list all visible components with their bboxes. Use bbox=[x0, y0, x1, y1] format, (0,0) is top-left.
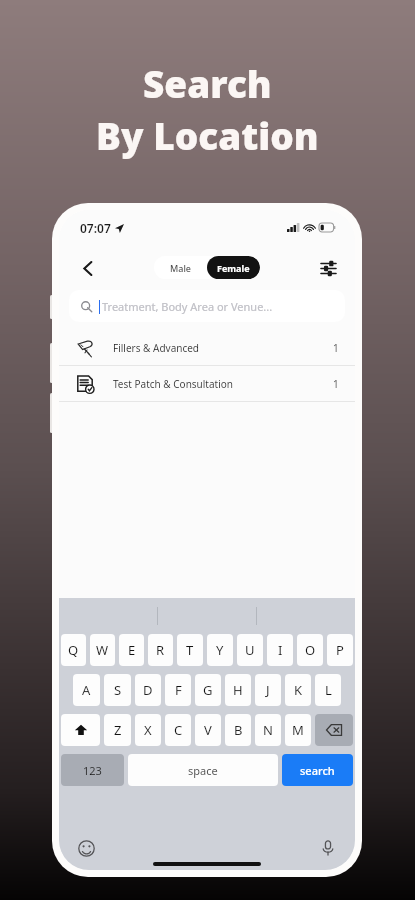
button[interactable]: U bbox=[237, 634, 263, 666]
staticText: 123 bbox=[83, 763, 102, 778]
button[interactable]: Backspace bbox=[315, 714, 353, 746]
button[interactable]: F bbox=[165, 674, 191, 706]
button[interactable]: search bbox=[282, 754, 353, 786]
button[interactable]: C bbox=[165, 714, 191, 746]
button[interactable]: J bbox=[255, 674, 281, 706]
staticText: T bbox=[186, 641, 194, 659]
staticText: 1 bbox=[333, 341, 339, 355]
staticText: Q bbox=[68, 641, 79, 659]
button[interactable]: A bbox=[73, 674, 100, 706]
button[interactable]: O bbox=[297, 634, 323, 666]
staticText: W bbox=[96, 641, 109, 659]
button[interactable]: I bbox=[267, 634, 293, 666]
staticText: Z bbox=[114, 721, 122, 739]
button[interactable]: Treatment, Body Area or Venue... bbox=[69, 290, 345, 322]
staticText: N bbox=[263, 721, 273, 739]
staticText: 1 bbox=[333, 377, 339, 391]
button[interactable]: 123 bbox=[61, 754, 124, 786]
staticText: X bbox=[144, 721, 152, 739]
staticText: K bbox=[294, 681, 303, 699]
button[interactable]: Male bbox=[154, 256, 207, 279]
button[interactable]: M bbox=[285, 714, 311, 746]
staticText: L bbox=[325, 681, 332, 699]
staticText: Female bbox=[217, 262, 250, 274]
staticText: C bbox=[174, 721, 183, 739]
button[interactable]: T bbox=[177, 634, 203, 666]
button[interactable]: S bbox=[104, 674, 131, 706]
staticText: space bbox=[188, 763, 218, 778]
staticText: 07:07 bbox=[80, 220, 111, 236]
staticText: D bbox=[143, 681, 153, 699]
button[interactable]: Back bbox=[71, 251, 105, 285]
staticText: H bbox=[233, 681, 243, 699]
button[interactable]: H bbox=[225, 674, 251, 706]
staticText: O bbox=[305, 641, 316, 659]
button[interactable]: K bbox=[285, 674, 311, 706]
staticText: R bbox=[156, 641, 165, 659]
button[interactable]: Emoji bbox=[73, 835, 99, 861]
button[interactable]: N bbox=[255, 714, 281, 746]
staticText: G bbox=[203, 681, 213, 699]
staticText: M bbox=[292, 721, 304, 739]
button[interactable]: space bbox=[128, 754, 278, 786]
button[interactable]: R bbox=[148, 634, 173, 666]
staticText: E bbox=[128, 641, 136, 659]
button[interactable]: Filters bbox=[313, 253, 343, 283]
staticText: By Location bbox=[96, 110, 319, 160]
button[interactable]: D bbox=[135, 674, 161, 706]
button[interactable]: Q bbox=[61, 634, 86, 666]
staticText: Fillers & Advanced bbox=[113, 341, 200, 355]
button[interactable]: E bbox=[119, 634, 144, 666]
staticText: B bbox=[234, 721, 243, 739]
staticText: Treatment, Body Area or Venue... bbox=[102, 299, 273, 314]
staticText: F bbox=[175, 681, 182, 699]
staticText: S bbox=[114, 681, 122, 699]
button[interactable]: Fillers & Advanced bbox=[59, 330, 355, 365]
button[interactable]: G bbox=[195, 674, 221, 706]
staticText: Search bbox=[143, 58, 272, 108]
staticText: J bbox=[266, 681, 270, 699]
staticText: P bbox=[336, 641, 344, 659]
staticText: I bbox=[278, 641, 283, 659]
staticText: search bbox=[300, 763, 335, 778]
button[interactable]: B bbox=[225, 714, 251, 746]
button[interactable]: Shift bbox=[61, 714, 100, 746]
button[interactable]: X bbox=[135, 714, 161, 746]
button[interactable]: Y bbox=[207, 634, 233, 666]
button[interactable]: V bbox=[195, 714, 221, 746]
button[interactable]: Female bbox=[207, 256, 260, 279]
button[interactable]: P bbox=[327, 634, 353, 666]
button[interactable]: L bbox=[315, 674, 341, 706]
button[interactable]: Voice input bbox=[315, 835, 341, 861]
staticText: Male bbox=[170, 262, 192, 274]
button[interactable]: Test Patch & Consultation bbox=[59, 366, 355, 401]
staticText: U bbox=[245, 641, 255, 659]
staticText: V bbox=[204, 721, 212, 739]
button[interactable]: W bbox=[90, 634, 115, 666]
staticText: Test Patch & Consultation bbox=[113, 377, 234, 391]
staticText: Y bbox=[216, 641, 224, 659]
button[interactable]: Z bbox=[104, 714, 131, 746]
staticText: A bbox=[82, 681, 91, 699]
